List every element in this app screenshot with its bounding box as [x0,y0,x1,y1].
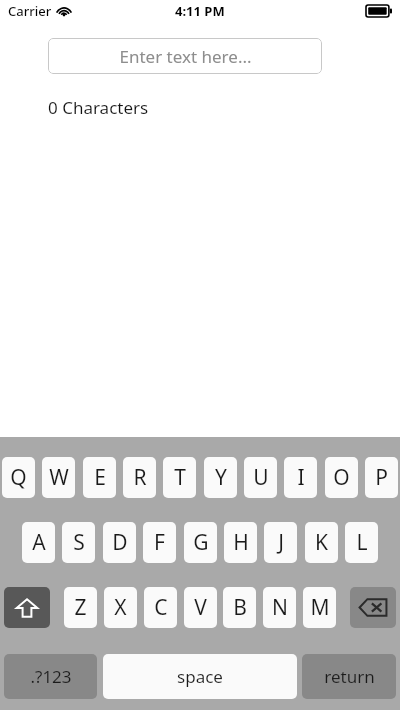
button[interactable]: J [264,522,297,563]
staticText: return [324,665,375,688]
button[interactable]: Shift [4,587,50,628]
button[interactable]: M [303,587,336,628]
staticText: H [233,528,249,557]
staticText: T [174,463,186,492]
button[interactable]: .?123 [4,654,97,699]
staticText: D [112,528,128,557]
button[interactable]: T [163,457,196,498]
button[interactable]: I [284,457,317,498]
staticText: O [333,463,350,492]
staticText: R [133,463,147,492]
staticText: G [193,528,209,557]
button[interactable]: H [224,522,257,563]
button[interactable]: W [42,457,75,498]
staticText: L [356,528,368,557]
staticText: F [154,528,165,557]
staticText: W [49,463,69,492]
staticText: N [272,593,288,622]
staticText: A [32,528,46,557]
staticText: Z [74,593,87,622]
button[interactable]: V [184,587,217,628]
staticText: J [278,528,284,557]
button[interactable]: Enter text here... [48,38,322,74]
button[interactable]: Q [2,457,35,498]
staticText: Y [215,463,227,492]
button[interactable]: A [22,522,55,563]
staticText: X [114,593,127,622]
button[interactable]: K [305,522,338,563]
button[interactable]: G [184,522,217,563]
button[interactable]: Y [204,457,237,498]
button[interactable]: Backspace [350,587,396,628]
button[interactable]: D [103,522,136,563]
staticText: M [310,593,330,622]
button[interactable]: S [62,522,95,563]
staticText: P [375,463,388,492]
button[interactable]: return [302,654,396,699]
button[interactable]: space [103,654,297,699]
staticText: 4:11 PM [175,2,225,20]
button[interactable]: N [263,587,296,628]
staticText: U [253,463,269,492]
staticText: E [94,463,106,492]
staticText: I [297,463,305,492]
button[interactable]: X [104,587,137,628]
staticText: space [177,665,223,688]
button[interactable]: U [244,457,277,498]
staticText: 0 Characters [48,96,149,119]
staticText: Enter text here... [119,45,252,68]
button[interactable]: E [83,457,116,498]
button[interactable]: F [143,522,176,563]
button[interactable]: C [144,587,177,628]
staticText: K [315,528,328,557]
button[interactable]: O [325,457,358,498]
staticText: V [194,593,207,622]
button[interactable]: R [123,457,156,498]
staticText: Q [10,463,27,492]
staticText: C [154,593,168,622]
staticText: .?123 [30,665,72,688]
button[interactable]: B [223,587,256,628]
button[interactable]: Z [64,587,97,628]
staticText: Carrier [8,2,52,20]
staticText: B [233,593,247,622]
button[interactable]: P [365,457,398,498]
staticText: S [73,528,85,557]
button[interactable]: L [345,522,378,563]
